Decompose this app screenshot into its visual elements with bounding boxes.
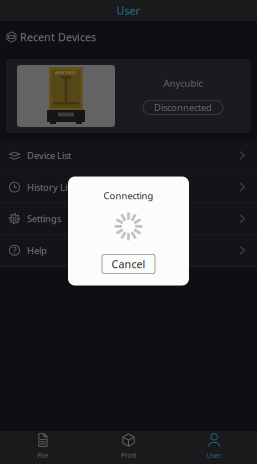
staticText: Connecting [103,189,153,202]
button[interactable]: Cancel [102,254,155,273]
staticText: Disconnected [154,101,212,114]
staticText: File [37,451,48,460]
staticText: User [207,451,222,460]
staticText: Cancel [111,257,145,271]
staticText: Settings [27,212,61,225]
button[interactable]: Settings [0,203,257,235]
staticText: History List [27,181,74,193]
staticText: Print [121,451,136,460]
button[interactable]: File [0,431,86,464]
staticText: ANYCUBIC [55,70,77,75]
staticText: Recent Devices [20,30,96,44]
button[interactable]: Print [86,431,171,464]
staticText: Device List [27,149,71,162]
staticText: Help [27,244,47,256]
staticText: ? [12,244,16,256]
button[interactable]: User [171,431,257,464]
staticText: User [116,3,140,18]
button[interactable]: Device List [0,140,257,172]
button[interactable]: ? [0,235,257,266]
button[interactable]: History List [0,172,257,203]
button[interactable]: Disconnected [143,100,223,114]
staticText: Anycubic [163,77,202,89]
